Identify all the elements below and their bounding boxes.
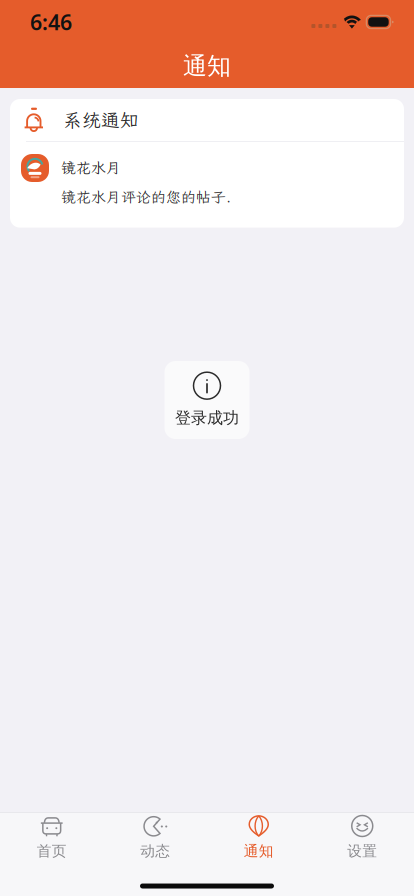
button[interactable]: 镜花水月 xyxy=(10,142,404,228)
staticText: 系统通知 xyxy=(63,108,139,132)
button[interactable]: 通知 xyxy=(207,813,310,862)
button[interactable]: 首页 xyxy=(0,813,103,862)
staticText: 首页 xyxy=(37,842,67,860)
staticText: 登录成功 xyxy=(175,408,239,428)
staticText: 6:46 xyxy=(30,8,72,36)
staticText: 通知 xyxy=(244,842,274,860)
button[interactable]: 动态 xyxy=(103,813,207,862)
staticText: 动态 xyxy=(140,842,170,860)
staticText: 通知 xyxy=(183,51,231,81)
button[interactable]: 设置 xyxy=(310,813,414,862)
staticText: 镜花水月评论的您的帖子. xyxy=(61,187,231,207)
button[interactable]: 系统通知 xyxy=(10,99,404,141)
staticText: 镜花水月 xyxy=(61,158,121,177)
staticText: 设置 xyxy=(347,842,377,860)
